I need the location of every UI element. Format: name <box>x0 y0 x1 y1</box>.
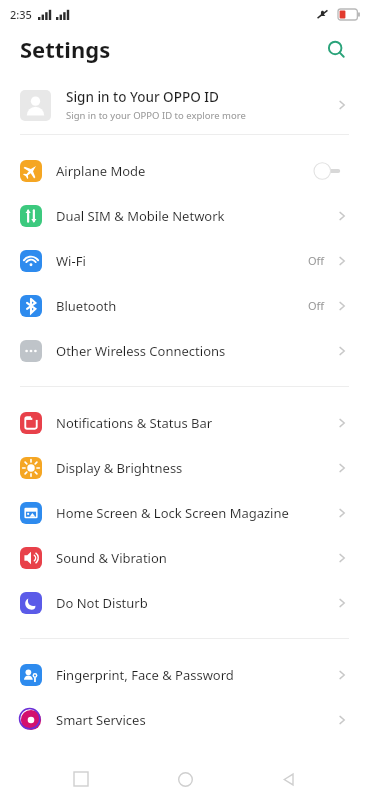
staticText: Home Screen & Lock Screen Magazine <box>56 504 335 522</box>
button[interactable]: Search <box>319 32 353 66</box>
staticText: Other Wireless Connections <box>56 342 335 360</box>
staticText: 2:35 <box>10 7 32 22</box>
staticText: Sign in to Your OPPO ID <box>66 88 219 106</box>
button[interactable]: Sound & Vibration <box>0 535 369 580</box>
button[interactable]: Home Screen & Lock Screen Magazine <box>0 490 369 535</box>
button[interactable]: Smart Services <box>0 697 369 742</box>
button[interactable]: Home <box>162 758 208 800</box>
button[interactable]: Airplane Mode <box>0 148 369 193</box>
staticText: Do Not Disturb <box>56 594 335 612</box>
staticText: Bluetooth <box>56 297 308 315</box>
button[interactable]: Bluetooth <box>0 283 369 328</box>
staticText: Display & Brightness <box>56 459 335 477</box>
staticText: Settings <box>20 34 111 64</box>
staticText: Fingerprint, Face & Password <box>56 666 335 684</box>
button[interactable]: Sign in to Your OPPO ID <box>0 76 369 134</box>
staticText: Sound & Vibration <box>56 549 335 567</box>
button[interactable]: Back <box>265 758 311 800</box>
staticText: Dual SIM & Mobile Network <box>56 207 335 225</box>
staticText: Off <box>308 298 325 313</box>
button[interactable]: Fingerprint, Face & Password <box>0 652 369 697</box>
staticText: Sign in to your OPPO ID to explore more <box>66 109 246 122</box>
staticText: Airplane Mode <box>56 162 313 180</box>
staticText: Off <box>308 253 325 268</box>
button[interactable]: Recents <box>58 758 104 800</box>
button[interactable]: Do Not Disturb <box>0 580 369 625</box>
staticText: Wi-Fi <box>56 252 308 270</box>
button[interactable]: Display & Brightness <box>0 445 369 490</box>
button[interactable]: Other Wireless Connections <box>0 328 369 373</box>
button[interactable]: Dual SIM & Mobile Network <box>0 193 369 238</box>
staticText: Notifications & Status Bar <box>56 414 335 432</box>
staticText: Smart Services <box>56 711 335 729</box>
button[interactable]: Notifications & Status Bar <box>0 400 369 445</box>
button[interactable]: Wi-Fi <box>0 238 369 283</box>
